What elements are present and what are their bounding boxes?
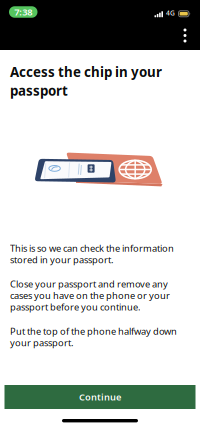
staticText: Close your passport and remove any cases… — [10, 278, 170, 313]
staticText: Put the top of the phone halfway down yo… — [10, 325, 177, 349]
button[interactable]: Continue — [4, 385, 195, 409]
button[interactable]: More options — [170, 20, 200, 50]
staticText: Access the chip in your passport — [10, 63, 162, 99]
staticText: 7:38 — [14, 6, 32, 18]
staticText: 4G — [166, 8, 175, 17]
staticText: Continue — [79, 391, 121, 403]
staticText: This is so we can check the information … — [10, 242, 174, 266]
